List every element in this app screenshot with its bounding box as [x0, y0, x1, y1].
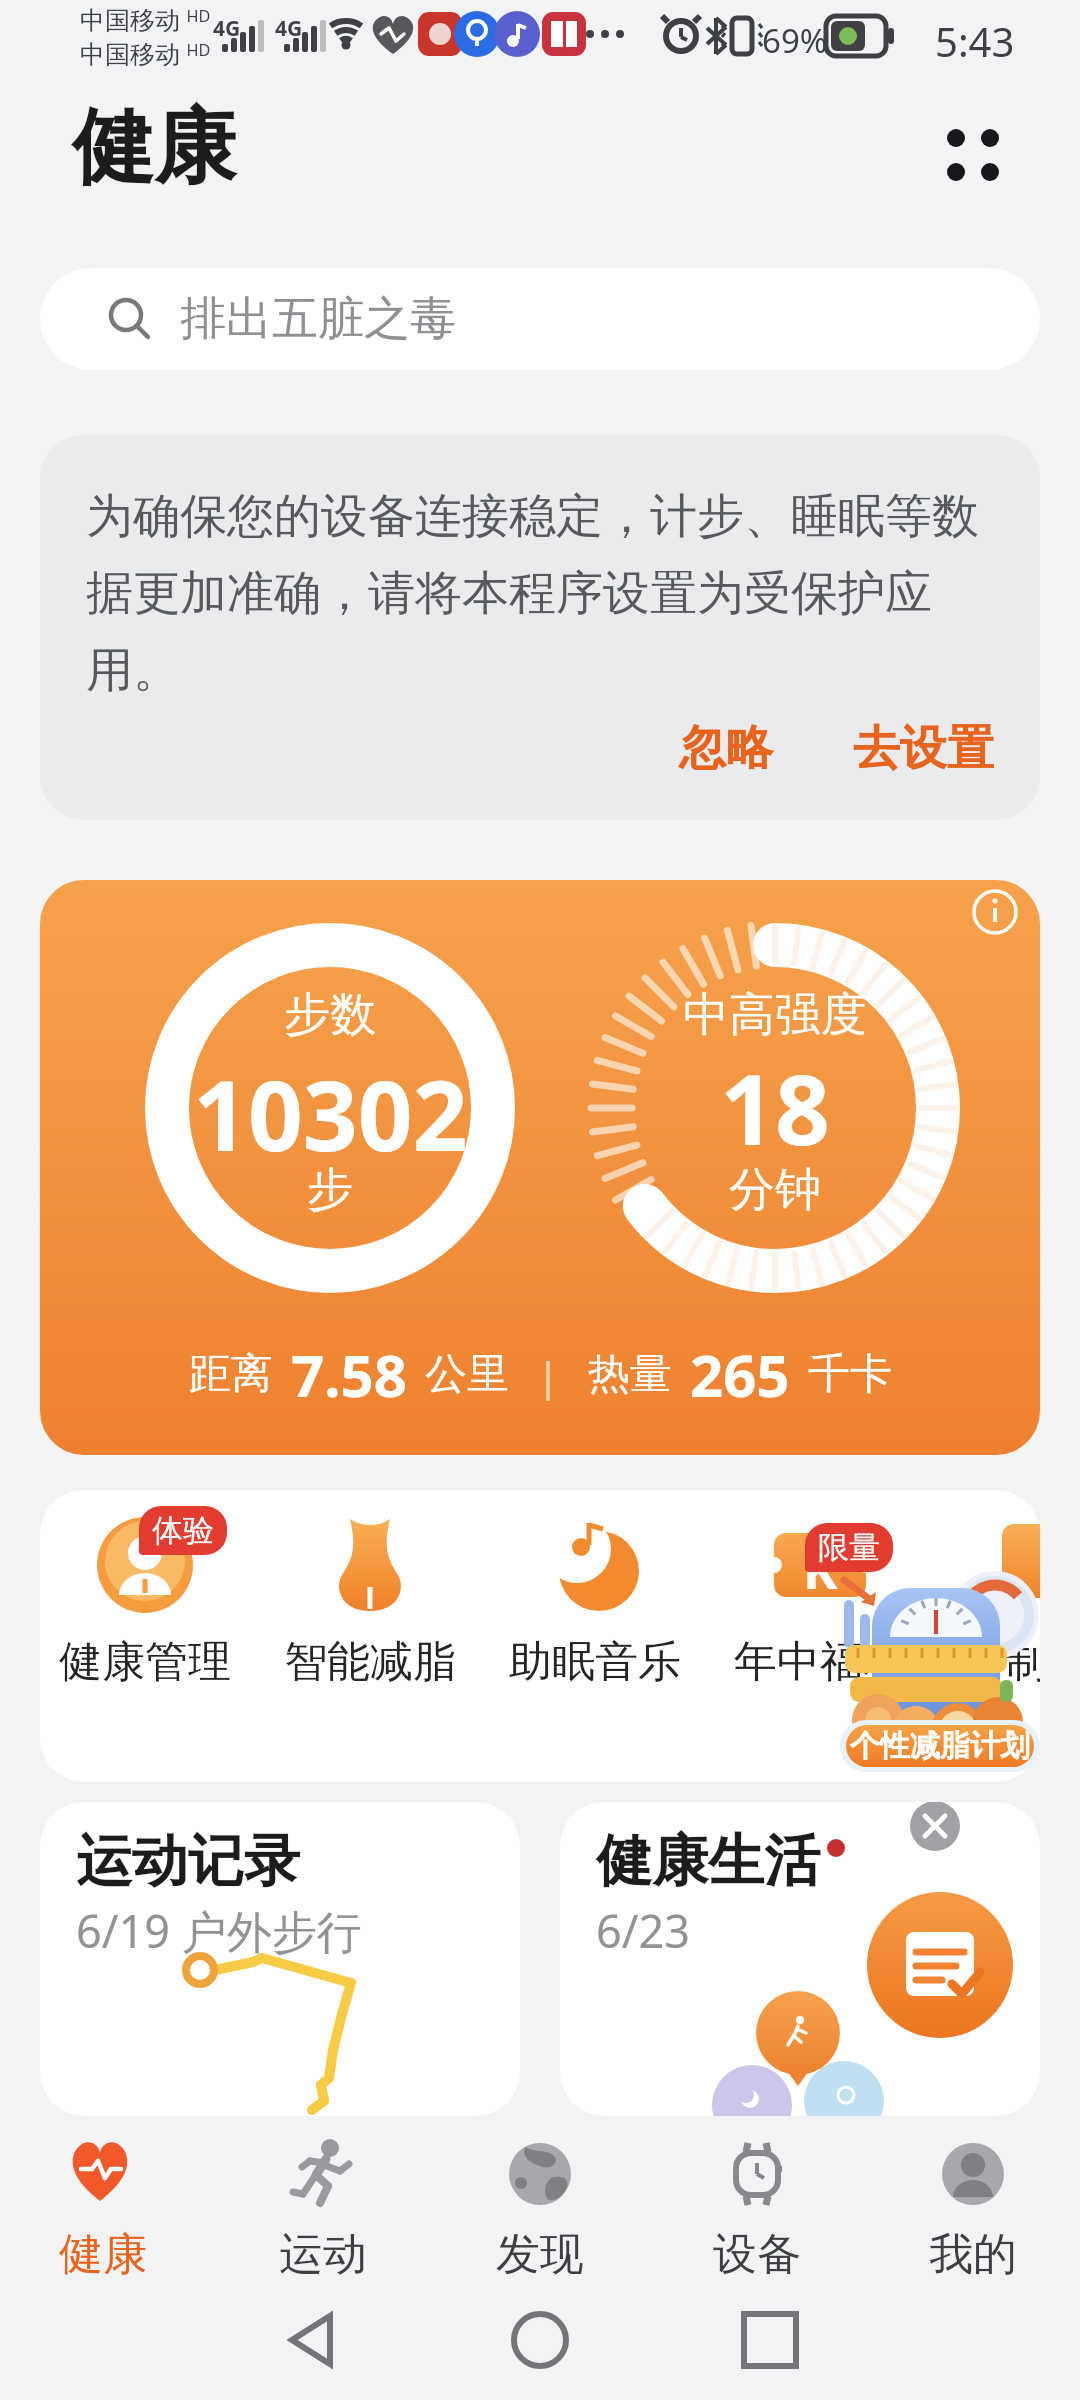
- staticText: 7.58: [291, 1335, 407, 1414]
- staticText: 忽略: [679, 719, 773, 778]
- staticText: 4G: [275, 14, 303, 43]
- button[interactable]: 设备: [662, 2125, 852, 2285]
- staticText: K: [803, 1533, 838, 1604]
- button[interactable]: 排出五脏之毒: [40, 268, 1040, 370]
- staticText: 助眠音乐: [509, 1635, 681, 1689]
- staticText: 健康管理: [59, 1635, 231, 1689]
- button[interactable]: 步数: [40, 880, 1040, 1455]
- staticText: 健康: [72, 96, 236, 199]
- staticText: 4G: [213, 14, 241, 43]
- staticText: 健康生活: [596, 1826, 820, 1897]
- staticText: 分钟: [729, 1161, 821, 1219]
- staticText: 5:43: [935, 14, 1015, 68]
- staticText: 69%: [762, 18, 828, 63]
- staticText: 运动记录: [76, 1826, 300, 1897]
- staticText: 步: [307, 1161, 353, 1219]
- staticText: 中国移动 ᴴᴰ: [80, 36, 211, 70]
- button[interactable]: 运动: [228, 2125, 418, 2285]
- staticText: 智能减脂: [284, 1635, 456, 1689]
- staticText: 6/19 户外步行: [76, 1900, 362, 1961]
- staticText: 限量: [818, 1528, 880, 1567]
- staticText: 18: [720, 1042, 830, 1162]
- staticText: 去设置: [853, 719, 994, 778]
- staticText: 6/23: [596, 1900, 690, 1961]
- staticText: 千卡: [808, 1348, 892, 1401]
- button[interactable]: 健康: [8, 2125, 198, 2285]
- button[interactable]: 发现: [445, 2125, 635, 2285]
- staticText: 265: [690, 1335, 790, 1414]
- staticText: 热量: [588, 1348, 672, 1401]
- staticText: 发现: [496, 2227, 584, 2282]
- staticText: 公里: [425, 1348, 509, 1401]
- button[interactable]: 智能减脂: [260, 1497, 480, 1727]
- button[interactable]: 制: [960, 1490, 1040, 1782]
- button[interactable]: K: [710, 1497, 930, 1727]
- staticText: 个性减脂计划: [850, 1727, 1030, 1765]
- button[interactable]: 忽略: [679, 719, 773, 778]
- staticText: 距离: [189, 1348, 273, 1401]
- staticText: 10302: [193, 1048, 468, 1168]
- staticText: 年中福利: [734, 1635, 906, 1689]
- button[interactable]: 去设置: [853, 719, 994, 778]
- staticText: 制: [1005, 1635, 1040, 1689]
- staticText: 运动: [279, 2227, 367, 2282]
- button[interactable]: 助眠音乐: [485, 1497, 705, 1727]
- button[interactable]: 我的: [878, 2125, 1068, 2285]
- staticText: 中高强度: [683, 986, 867, 1044]
- staticText: 中国移动 ᴴᴰ: [80, 2, 211, 36]
- staticText: 设备: [713, 2227, 801, 2282]
- staticText: |: [537, 1348, 560, 1402]
- staticText: 排出五脏之毒: [180, 290, 456, 348]
- button[interactable]: 运动记录: [40, 1802, 520, 2116]
- staticText: 健康: [59, 2227, 147, 2282]
- button[interactable]: [930, 110, 1010, 190]
- staticText: 体验: [152, 1511, 214, 1550]
- staticText: 我的: [929, 2227, 1017, 2282]
- button[interactable]: 健康生活: [560, 1802, 1040, 2116]
- button[interactable]: 健康管理: [35, 1497, 255, 1727]
- staticText: 为确保您的设备连接稳定，计步、睡眠等数 据更加准确，请将本程序设置为受保护应 用…: [86, 487, 979, 700]
- staticText: 步数: [284, 986, 376, 1044]
